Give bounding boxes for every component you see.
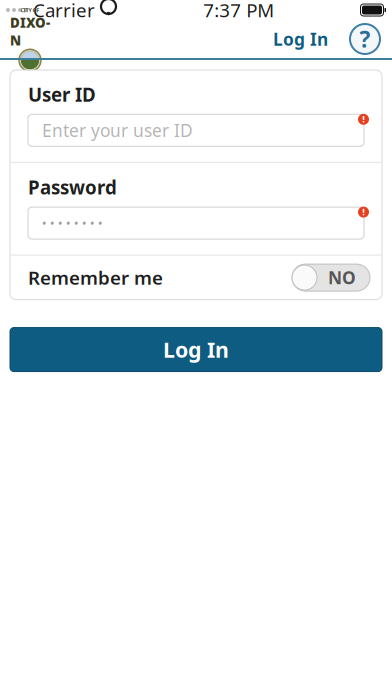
staticText: • • • • • • • • bbox=[42, 215, 103, 231]
staticText: Enter your user ID bbox=[42, 119, 193, 142]
staticText: NO bbox=[328, 266, 356, 289]
staticText: Password bbox=[28, 175, 117, 200]
staticText: 7:37 PM bbox=[203, 0, 274, 22]
staticText: Log In bbox=[163, 335, 229, 364]
button[interactable]: Log In bbox=[267, 21, 334, 56]
staticText: Log In bbox=[273, 27, 328, 50]
button[interactable]: Remember me bbox=[10, 256, 382, 300]
button[interactable]: Log In bbox=[10, 328, 382, 372]
staticText: ? bbox=[359, 24, 370, 54]
staticText: User ID bbox=[28, 82, 96, 107]
staticText: DIXON bbox=[10, 14, 50, 49]
staticText: CITY OF bbox=[20, 7, 39, 14]
staticText: Carrier bbox=[33, 0, 95, 22]
button[interactable]: Help bbox=[348, 22, 382, 56]
staticText: Remember me bbox=[28, 265, 163, 290]
